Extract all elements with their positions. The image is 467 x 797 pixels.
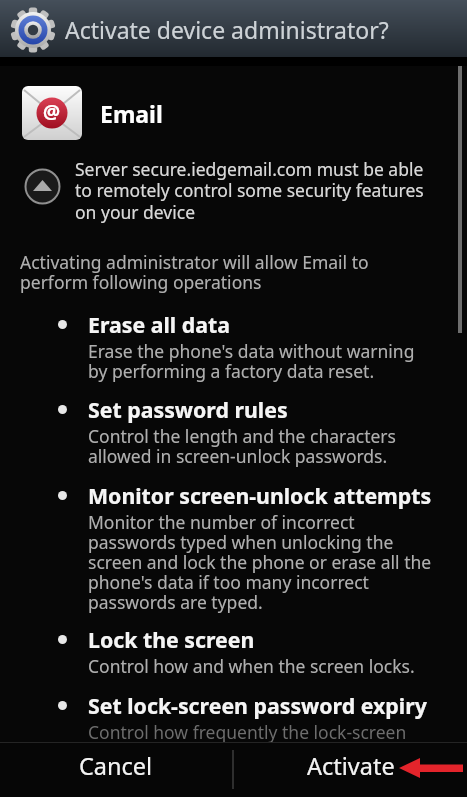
staticText: Activate [307,750,395,782]
staticText: Activate device administrator? [65,14,389,45]
staticText: Server secure.iedgemail.com must be able… [75,157,424,224]
staticText: Lock the screen [88,625,255,654]
staticText: Activating administrator will allow Emai… [20,250,369,295]
staticText: Set lock-screen password expiry [88,691,427,720]
staticText: Control how and when the screen locks. [88,654,415,678]
staticText: Erase all data [88,310,230,339]
staticText: Email [100,98,163,129]
button[interactable]: Cancel [0,742,232,797]
staticText: Control how frequently the lock-screen [88,720,407,742]
button[interactable] [24,168,61,205]
staticText: Monitor screen-unlock attempts [88,481,432,510]
staticText: Monitor the number of incorrect password… [88,510,432,614]
staticText: Erase the phone's data without warning b… [88,339,415,383]
staticText: Set password rules [88,395,288,424]
button[interactable]: Activate [234,742,467,797]
staticText: Cancel [79,750,153,782]
staticText: Control the length and the characters al… [88,424,396,468]
staticText: @ [43,99,61,125]
